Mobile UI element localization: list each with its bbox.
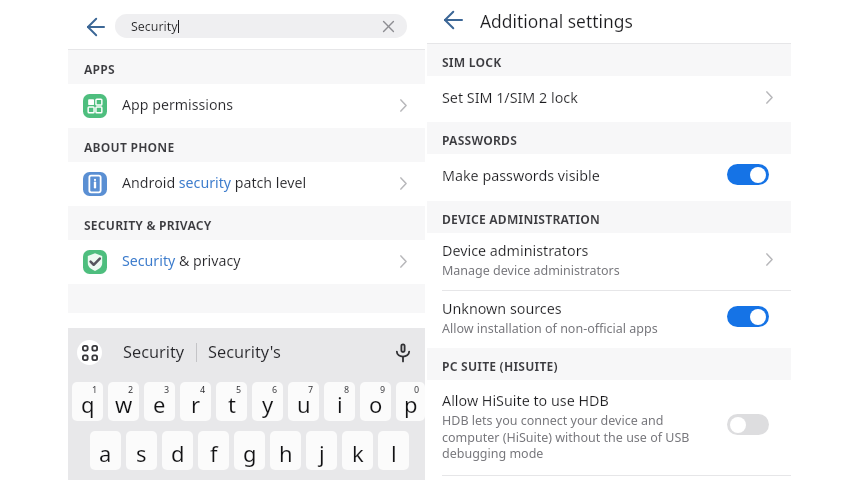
button[interactable]: j	[306, 431, 337, 470]
staticText: h	[279, 438, 293, 468]
staticText: ABOUT PHONE	[84, 139, 175, 155]
staticText: y	[262, 389, 274, 419]
staticText: g	[243, 438, 257, 468]
staticText: 3	[164, 383, 170, 395]
staticText: Allow HiSuite to use HDB	[442, 391, 609, 410]
staticText: k	[352, 438, 364, 468]
button[interactable]: Back	[78, 9, 113, 44]
staticText: a	[99, 438, 112, 468]
staticText: 0	[414, 383, 420, 395]
staticText: w	[115, 389, 133, 419]
button[interactable]: g	[234, 431, 265, 470]
staticText: SIM LOCK	[442, 54, 502, 70]
staticText: q	[81, 389, 95, 419]
staticText: Android security patch level	[122, 173, 307, 192]
staticText: 2	[128, 383, 134, 395]
staticText: 6	[272, 383, 278, 395]
button[interactable]: Switch off	[727, 414, 769, 435]
staticText: 7	[308, 383, 314, 395]
staticText: t	[228, 389, 236, 419]
button[interactable]: o	[360, 382, 391, 421]
button[interactable]: i	[324, 382, 355, 421]
staticText: 1	[92, 383, 98, 395]
button[interactable]: Security	[123, 341, 185, 363]
staticText: SECURITY & PRIVACY	[84, 217, 212, 233]
button[interactable]: l	[378, 431, 409, 470]
button[interactable]: Security	[115, 14, 407, 38]
button[interactable]: Device administrators	[427, 233, 791, 290]
button[interactable]: Switch on	[727, 306, 769, 327]
button[interactable]: w	[108, 382, 139, 421]
staticText: DEVICE ADMINISTRATION	[442, 211, 601, 227]
staticText: App permissions	[122, 95, 234, 114]
staticText: e	[153, 389, 166, 419]
button[interactable]: a	[90, 431, 121, 470]
button[interactable]: t	[216, 382, 247, 421]
button[interactable]: Set SIM 1/SIM 2 lock	[427, 76, 791, 122]
button[interactable]: Voice input	[389, 338, 417, 366]
staticText: 5	[236, 383, 242, 395]
staticText: p	[404, 389, 418, 419]
staticText: Security & privacy	[122, 251, 241, 270]
staticText: o	[369, 389, 383, 419]
button[interactable]: d	[162, 431, 193, 470]
button[interactable]: q	[72, 382, 103, 421]
staticText: Security	[131, 18, 178, 35]
button[interactable]: Unknown sources	[427, 291, 791, 348]
button[interactable]: Security & privacy	[68, 240, 425, 284]
button[interactable]: u	[288, 382, 319, 421]
staticText: Additional settings	[480, 9, 633, 33]
staticText: s	[136, 438, 147, 468]
button[interactable]: e	[144, 382, 175, 421]
button[interactable]: r	[180, 382, 211, 421]
button[interactable]: App permissions	[68, 84, 425, 128]
button[interactable]: Security's	[208, 341, 281, 363]
button[interactable]: p	[396, 382, 425, 421]
staticText: l	[391, 438, 397, 468]
staticText: 4	[200, 383, 206, 395]
button[interactable]: h	[270, 431, 301, 470]
button[interactable]: y	[252, 382, 283, 421]
button[interactable]: s	[126, 431, 157, 470]
staticText: j	[319, 438, 325, 468]
button[interactable]: Switch on	[727, 164, 769, 185]
staticText: d	[171, 438, 185, 468]
staticText: PC SUITE (HISUITE)	[442, 358, 558, 374]
staticText: APPS	[84, 61, 115, 77]
staticText: r	[191, 389, 201, 419]
staticText: u	[297, 389, 311, 419]
button[interactable]: Android security patch level	[68, 162, 425, 206]
button[interactable]: k	[342, 431, 373, 470]
button[interactable]: Allow HiSuite to use HDB	[427, 380, 791, 475]
staticText: 8	[344, 383, 350, 395]
staticText: PASSWORDS	[442, 132, 517, 148]
staticText: Manage device administrators	[442, 262, 620, 279]
staticText: Set SIM 1/SIM 2 lock	[442, 88, 578, 107]
button[interactable]: Back	[427, 0, 480, 43]
staticText: Unknown sources	[442, 299, 562, 318]
button[interactable]: f	[198, 431, 229, 470]
staticText: Allow installation of non-official apps	[442, 320, 658, 337]
staticText: Device administrators	[442, 241, 589, 260]
staticText: i	[337, 389, 343, 419]
staticText: Make passwords visible	[442, 166, 600, 185]
staticText: HDB lets you connect your device and com…	[442, 412, 690, 461]
staticText: 9	[380, 383, 386, 395]
button[interactable]: Keyboard switch	[77, 340, 102, 365]
button[interactable]: Make passwords visible	[427, 154, 791, 201]
staticText: f	[210, 438, 218, 468]
